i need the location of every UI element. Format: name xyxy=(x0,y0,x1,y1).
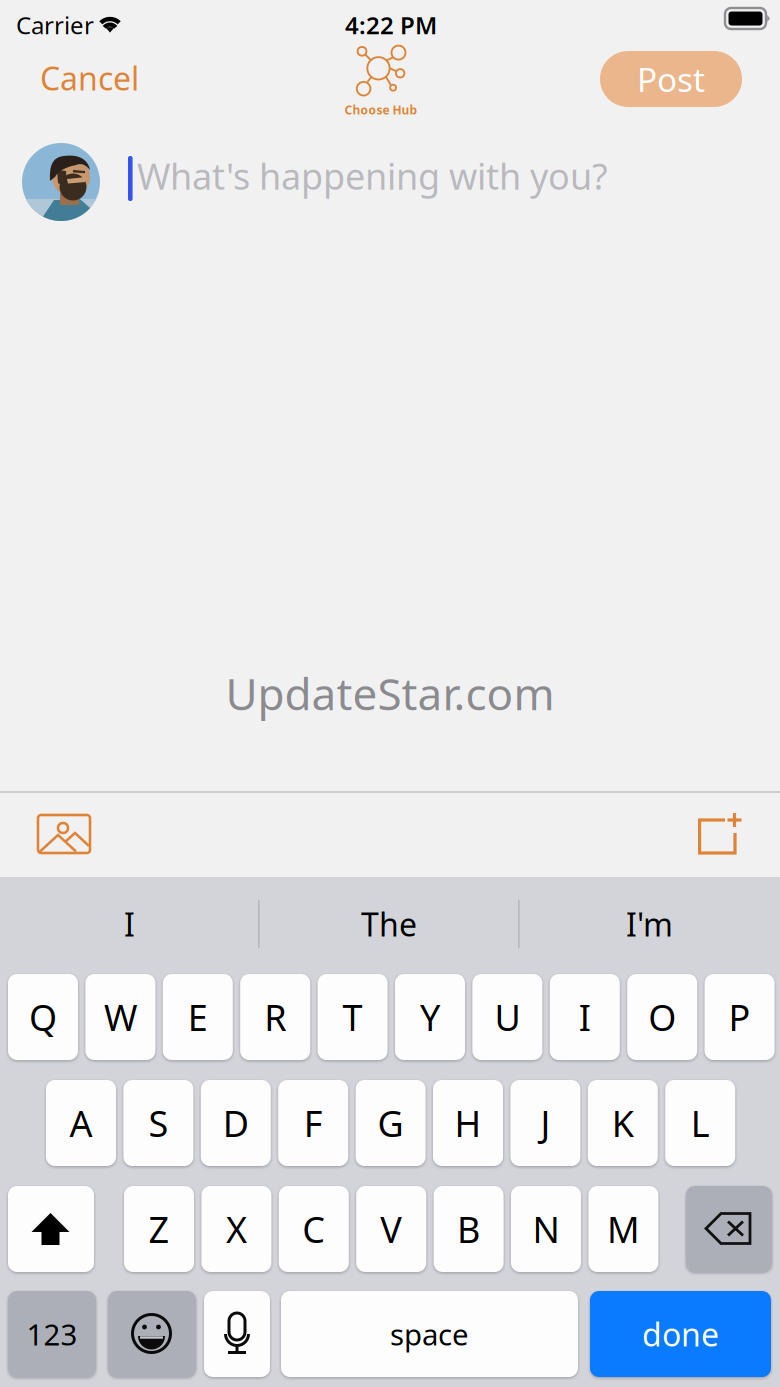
staticText: C xyxy=(302,1205,325,1253)
staticText: space xyxy=(390,1314,469,1353)
staticText: I xyxy=(124,903,135,945)
staticText: The xyxy=(361,903,417,945)
button[interactable]: I'm xyxy=(519,889,780,959)
button[interactable]: R xyxy=(240,974,310,1060)
button[interactable]: I xyxy=(550,974,620,1060)
button[interactable]: K xyxy=(588,1080,658,1166)
button[interactable]: F xyxy=(278,1080,348,1166)
button[interactable]: U xyxy=(472,974,542,1060)
staticText: UpdateStar.com xyxy=(225,664,554,722)
button[interactable]: J xyxy=(510,1080,580,1166)
button[interactable]: A xyxy=(46,1080,116,1166)
staticText: X xyxy=(226,1205,247,1253)
staticText: 4:22 PM xyxy=(345,9,437,41)
button[interactable]: I xyxy=(0,889,259,959)
button[interactable]: Cancel xyxy=(40,58,140,98)
staticText: done xyxy=(642,1313,719,1355)
button[interactable]: Post xyxy=(600,51,742,107)
staticText: N xyxy=(532,1205,559,1253)
staticText: A xyxy=(69,1099,92,1147)
staticText: D xyxy=(223,1099,249,1147)
button[interactable] xyxy=(8,1186,94,1272)
staticText: G xyxy=(378,1099,404,1147)
staticText: Z xyxy=(148,1205,169,1253)
button[interactable]: H xyxy=(433,1080,503,1166)
staticText: H xyxy=(454,1099,481,1147)
button[interactable]: D xyxy=(201,1080,271,1166)
button[interactable]: L xyxy=(665,1080,735,1166)
staticText: What's happening with you? xyxy=(137,152,608,200)
staticText: Post xyxy=(637,57,705,101)
staticText: Q xyxy=(29,993,57,1041)
button[interactable]: W xyxy=(85,974,155,1060)
staticText: I'm xyxy=(626,903,673,945)
button[interactable]: B xyxy=(434,1186,504,1272)
button[interactable]: M xyxy=(588,1186,658,1272)
button[interactable] xyxy=(204,1291,270,1377)
staticText: B xyxy=(457,1205,480,1253)
button[interactable] xyxy=(686,1186,772,1272)
staticText: K xyxy=(612,1099,634,1147)
button[interactable]: Y xyxy=(395,974,465,1060)
staticText: R xyxy=(264,993,286,1041)
button[interactable]: N xyxy=(511,1186,581,1272)
button[interactable]: P xyxy=(705,974,775,1060)
button[interactable]: E xyxy=(163,974,233,1060)
button[interactable]: Q xyxy=(8,974,78,1060)
button[interactable]: T xyxy=(318,974,388,1060)
button[interactable]: New post xyxy=(698,812,743,855)
button[interactable]: The xyxy=(259,889,519,959)
staticText: J xyxy=(540,1099,550,1147)
staticText: S xyxy=(148,1099,168,1147)
staticText: E xyxy=(188,993,208,1041)
staticText: I xyxy=(579,993,591,1041)
staticText: M xyxy=(607,1205,640,1253)
staticText: U xyxy=(494,993,520,1041)
button[interactable]: O xyxy=(627,974,697,1060)
staticText: Cancel xyxy=(40,57,139,99)
button[interactable]: done xyxy=(590,1291,771,1377)
button[interactable]: 123 xyxy=(8,1291,96,1377)
staticText: F xyxy=(304,1099,323,1147)
staticText: Y xyxy=(420,993,440,1041)
staticText: W xyxy=(104,993,137,1041)
button[interactable] xyxy=(108,1291,196,1377)
staticText: L xyxy=(691,1099,710,1147)
staticText: 123 xyxy=(26,1314,77,1353)
button[interactable]: Choose Hub xyxy=(344,46,418,118)
staticText: V xyxy=(380,1205,402,1253)
staticText: P xyxy=(729,993,751,1041)
button[interactable]: X xyxy=(201,1186,271,1272)
staticText: O xyxy=(648,993,676,1041)
button[interactable]: V xyxy=(356,1186,426,1272)
button[interactable]: Z xyxy=(124,1186,194,1272)
button[interactable]: C xyxy=(279,1186,349,1272)
button[interactable]: Add photo xyxy=(38,815,92,855)
button[interactable]: space xyxy=(281,1291,578,1377)
staticText: Choose Hub xyxy=(344,102,417,118)
staticText: Carrier xyxy=(16,9,94,41)
button[interactable]: G xyxy=(356,1080,426,1166)
button[interactable]: S xyxy=(123,1080,193,1166)
staticText: T xyxy=(343,993,363,1041)
